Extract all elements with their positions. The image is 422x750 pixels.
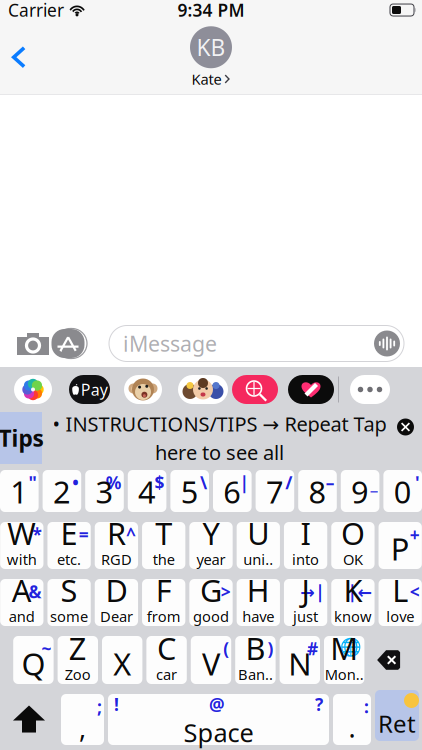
button[interactable] [331, 522, 374, 569]
button[interactable]: Tips [0, 412, 42, 464]
staticText: O [341, 513, 365, 553]
button[interactable]: Search [228, 375, 278, 404]
button[interactable]: More [339, 375, 390, 404]
staticText: Z [69, 628, 87, 668]
staticText: ~ [42, 637, 52, 660]
staticText: from [147, 606, 181, 626]
staticText: Tips [0, 423, 43, 453]
button[interactable]: * [0, 522, 43, 569]
button[interactable]: ; [61, 694, 104, 745]
button[interactable] [146, 636, 187, 684]
button[interactable]: = [47, 522, 91, 569]
staticText: < [410, 580, 420, 603]
staticText: J [302, 570, 310, 610]
button[interactable]: + [379, 522, 422, 569]
button[interactable]: < [379, 579, 422, 626]
staticText: 5 [181, 471, 199, 512]
staticText: →| [300, 580, 325, 603]
staticText: . [348, 710, 355, 745]
button[interactable] [102, 636, 142, 684]
staticText: ) [268, 637, 274, 660]
button[interactable]: ! [108, 694, 329, 745]
staticText: love [386, 606, 414, 626]
staticText: 🌐 [340, 637, 362, 657]
staticText: car [156, 664, 177, 684]
staticText: 0 [394, 471, 412, 512]
button[interactable]: ^ [95, 522, 138, 569]
staticText: R [107, 513, 126, 553]
staticText: X [113, 643, 131, 684]
staticText: RGD [101, 549, 132, 569]
staticText: P [391, 528, 410, 569]
button[interactable]: Animoji [110, 375, 162, 404]
staticText: U [247, 513, 269, 553]
button[interactable]: / [256, 470, 294, 512]
button[interactable]: |← [331, 579, 374, 626]
button[interactable] [284, 522, 327, 569]
staticText: @ [209, 693, 225, 716]
staticText: * [32, 523, 41, 546]
staticText: have [242, 606, 274, 626]
button[interactable]: Memoji [162, 375, 228, 404]
button[interactable]: ) [235, 636, 276, 684]
button[interactable]: – [298, 470, 337, 512]
staticText: + [410, 523, 420, 546]
button[interactable]: ( [191, 636, 231, 684]
button[interactable] [189, 522, 233, 569]
staticText: W [7, 513, 36, 553]
staticText: # [307, 637, 318, 660]
button[interactable]: Ret [375, 694, 419, 745]
button[interactable] [58, 636, 98, 684]
button[interactable]: Camera [16, 325, 50, 361]
button[interactable]: • [43, 470, 81, 512]
staticText: 7 [266, 471, 284, 512]
staticText: here to see all [155, 439, 284, 466]
staticText: K [343, 570, 362, 610]
button[interactable]: Back [0, 35, 38, 79]
button[interactable]: : [333, 694, 371, 745]
staticText: OK [343, 549, 363, 569]
staticText: D [105, 570, 127, 610]
button[interactable] [47, 579, 91, 626]
staticText: ? [315, 693, 323, 716]
button[interactable] [95, 579, 138, 626]
button[interactable]: ' [383, 470, 422, 512]
button[interactable]: Delete [368, 636, 409, 684]
button[interactable]: Dismiss tips [397, 418, 422, 457]
button[interactable] [237, 522, 280, 569]
button[interactable]: % [85, 470, 124, 512]
button[interactable] [142, 579, 185, 626]
staticText: ; [97, 695, 102, 718]
staticText: |← [348, 580, 373, 603]
staticText: L [392, 570, 408, 610]
button[interactable]: _ [341, 470, 379, 512]
button[interactable]: Shift [3, 694, 57, 745]
staticText: • INSTRUCTIONS/TIPS → Repeat Tap [52, 410, 386, 437]
button[interactable]: Photos [14, 375, 52, 404]
button[interactable]: > [189, 579, 233, 626]
button[interactable]: " [0, 470, 39, 512]
staticText: just [293, 606, 318, 626]
button[interactable]: 🌐 [324, 636, 364, 684]
button[interactable]: & [0, 579, 43, 626]
button[interactable]: \ [170, 470, 209, 512]
staticText: some [50, 606, 88, 626]
button[interactable]: Apple Pay [52, 375, 110, 404]
button[interactable]: # [280, 636, 320, 684]
staticText: , [79, 710, 86, 745]
staticText: Q [21, 643, 45, 684]
staticText: | [240, 471, 250, 494]
button[interactable] [142, 522, 185, 569]
staticText: ^ [126, 523, 136, 546]
button[interactable]: Digital Touch [278, 375, 334, 404]
button[interactable]: KB [190, 26, 232, 89]
button[interactable]: →| [284, 579, 327, 626]
button[interactable]: | [213, 470, 252, 512]
staticText: 8 [308, 471, 326, 512]
button[interactable]: $ [128, 470, 166, 512]
staticText: and [9, 606, 35, 626]
staticText: the [153, 549, 175, 569]
button[interactable]: ~ [13, 636, 54, 684]
button[interactable]: App Store [50, 325, 86, 361]
button[interactable] [237, 579, 280, 626]
